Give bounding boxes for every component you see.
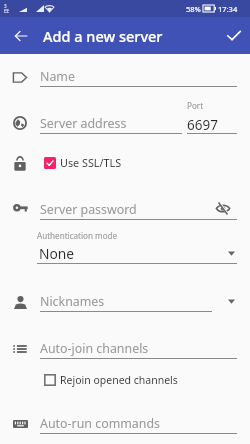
staticText: Server address <box>40 115 127 132</box>
staticText: 58% <box>186 4 201 14</box>
staticText: 6697 <box>187 116 218 134</box>
staticText: 3 EE <box>4 3 10 14</box>
staticText: Rejoin opened channels <box>60 373 178 387</box>
staticText: Use SSL/TLS <box>60 155 122 170</box>
staticText: Port <box>187 100 204 111</box>
button[interactable]: Select authentication mode <box>222 243 240 263</box>
button[interactable]: Save <box>215 17 250 54</box>
button[interactable]: Select nickname <box>222 291 240 311</box>
button[interactable]: Rejoin opened channels <box>42 370 182 390</box>
staticText: Add a new server <box>43 26 163 46</box>
button[interactable]: Back <box>2 17 39 54</box>
staticText: Authentication mode <box>37 230 118 241</box>
staticText: Auto-run commands <box>40 415 160 432</box>
staticText: Name <box>40 68 75 85</box>
button[interactable]: Use SSL/TLS <box>42 152 132 172</box>
button[interactable]: Show password <box>212 197 234 219</box>
staticText: 17:34 <box>218 4 238 14</box>
staticText: Auto-join channels <box>40 340 149 357</box>
staticText: Server password <box>40 201 137 218</box>
staticText: None <box>39 244 75 263</box>
staticText: Nicknames <box>40 293 105 310</box>
